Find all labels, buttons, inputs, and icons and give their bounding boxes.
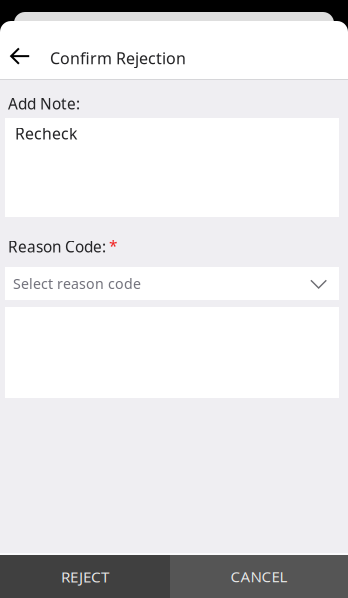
staticText: Select reason code <box>13 274 141 293</box>
staticText: * <box>109 235 117 256</box>
staticText: Add Note: <box>8 93 80 114</box>
button[interactable]: Select reason code <box>0 267 348 300</box>
staticText: CANCEL <box>230 566 287 587</box>
staticText: Confirm Rejection <box>50 47 186 69</box>
staticText: Reason Code: <box>8 236 106 257</box>
staticText: REJECT <box>61 566 109 587</box>
button[interactable]: Back <box>0 35 39 79</box>
button[interactable]: REJECT <box>0 555 170 598</box>
staticText: Recheck <box>15 123 77 144</box>
button[interactable]: CANCEL <box>170 555 348 598</box>
